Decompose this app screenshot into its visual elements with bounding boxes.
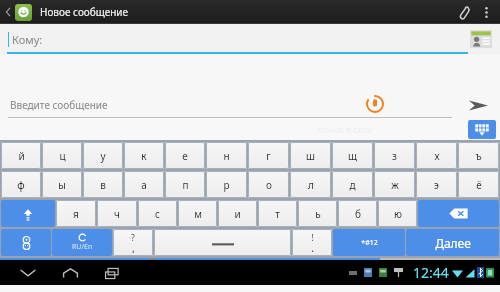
staticText: 12:44 xyxy=(413,263,449,282)
staticText: и xyxy=(234,207,241,221)
button[interactable]: б xyxy=(338,200,377,227)
staticText: з xyxy=(392,149,397,163)
button[interactable]: м xyxy=(178,200,217,227)
staticText: о xyxy=(266,178,272,192)
staticText: ! xyxy=(311,232,314,243)
staticText: , xyxy=(132,243,135,254)
button[interactable]: к xyxy=(124,142,164,169)
staticText: . xyxy=(311,243,314,254)
button[interactable]: у xyxy=(83,142,123,169)
staticText: Новое сообщение xyxy=(40,5,129,19)
button[interactable]: Send xyxy=(456,92,500,118)
button[interactable]: х xyxy=(416,142,457,169)
staticText: й xyxy=(18,149,25,163)
button[interactable]: Shift xyxy=(1,200,55,227)
staticText: я xyxy=(73,207,79,221)
staticText: г xyxy=(266,149,271,163)
button[interactable]: Далее xyxy=(406,229,499,256)
staticText: щ xyxy=(348,149,357,163)
button[interactable]: ъ xyxy=(458,142,499,169)
staticText: н xyxy=(223,149,230,163)
button[interactable]: Emoji xyxy=(1,229,51,256)
staticText: к xyxy=(141,149,147,163)
staticText: ю xyxy=(394,207,402,221)
button[interactable]: р xyxy=(206,171,247,198)
button[interactable]: Recent apps xyxy=(98,261,126,285)
staticText: д xyxy=(349,178,356,192)
staticText: RU/En xyxy=(72,242,93,252)
button[interactable]: л xyxy=(290,171,331,198)
staticText: ё xyxy=(476,178,482,192)
staticText: а xyxy=(141,178,147,192)
button[interactable]: з xyxy=(374,142,415,169)
button[interactable]: т xyxy=(258,200,297,227)
staticText: ь xyxy=(315,207,321,221)
staticText: *#12 xyxy=(361,238,378,248)
button[interactable]: а xyxy=(124,171,164,198)
button[interactable]: ж xyxy=(374,171,415,198)
staticText: ъ xyxy=(475,149,482,163)
button[interactable]: Attach xyxy=(450,0,476,24)
staticText: е xyxy=(182,149,188,163)
staticText: п xyxy=(182,178,189,192)
button[interactable]: ч xyxy=(97,200,137,227)
button[interactable]: ы xyxy=(42,171,82,198)
staticText: с xyxy=(155,207,160,221)
button[interactable]: *#12 xyxy=(333,229,405,256)
button[interactable]: г xyxy=(248,142,289,169)
staticText: ы xyxy=(58,178,66,192)
staticText: б xyxy=(355,207,361,221)
button[interactable]: Hide keyboard xyxy=(468,120,496,139)
staticText: т xyxy=(275,207,280,221)
button[interactable]: ё xyxy=(458,171,499,198)
button[interactable]: ! xyxy=(292,229,332,256)
button[interactable]: э xyxy=(416,171,457,198)
button[interactable]: ? xyxy=(113,229,153,256)
button[interactable]: п xyxy=(165,171,205,198)
button[interactable]: ц xyxy=(42,142,82,169)
button[interactable]: о xyxy=(248,171,289,198)
button[interactable]: ш xyxy=(290,142,331,169)
button[interactable]: Back xyxy=(14,261,42,285)
button[interactable]: Введите сообщение xyxy=(0,92,456,118)
button[interactable]: в xyxy=(83,171,123,198)
button[interactable]: я xyxy=(56,200,96,227)
button[interactable]: ю xyxy=(378,200,417,227)
button[interactable]: ф xyxy=(1,171,41,198)
button[interactable]: д xyxy=(332,171,373,198)
button[interactable]: More options xyxy=(478,0,494,24)
staticText: ? xyxy=(131,232,135,243)
staticText: ш xyxy=(306,149,315,163)
staticText: ф xyxy=(17,178,25,192)
button[interactable]: ь xyxy=(298,200,337,227)
staticText: э xyxy=(434,178,439,192)
staticText: ж xyxy=(391,178,399,192)
staticText: м xyxy=(194,207,202,221)
staticText: ч xyxy=(114,207,120,221)
staticText: Кому: xyxy=(12,32,43,47)
button[interactable]: Choose contact xyxy=(468,28,494,50)
staticText: ц xyxy=(59,149,66,163)
button[interactable]: Кому: xyxy=(0,24,468,54)
staticText: Далее xyxy=(435,235,471,251)
button[interactable]: с xyxy=(138,200,177,227)
staticText: х xyxy=(434,149,440,163)
button[interactable]: е xyxy=(165,142,205,169)
button[interactable]: н xyxy=(206,142,247,169)
staticText: у xyxy=(100,149,106,163)
button[interactable]: и xyxy=(218,200,257,227)
button[interactable]: й xyxy=(1,142,41,169)
staticText: Введите сообщение xyxy=(10,98,108,112)
button[interactable]: Switch language xyxy=(52,229,112,256)
button[interactable]: Backspace xyxy=(418,200,499,227)
staticText: р xyxy=(223,178,230,192)
staticText: л xyxy=(308,178,314,192)
staticText: в xyxy=(100,178,106,192)
button[interactable]: Space xyxy=(154,229,291,256)
button[interactable]: Home xyxy=(56,261,84,285)
button[interactable]: щ xyxy=(332,142,373,169)
